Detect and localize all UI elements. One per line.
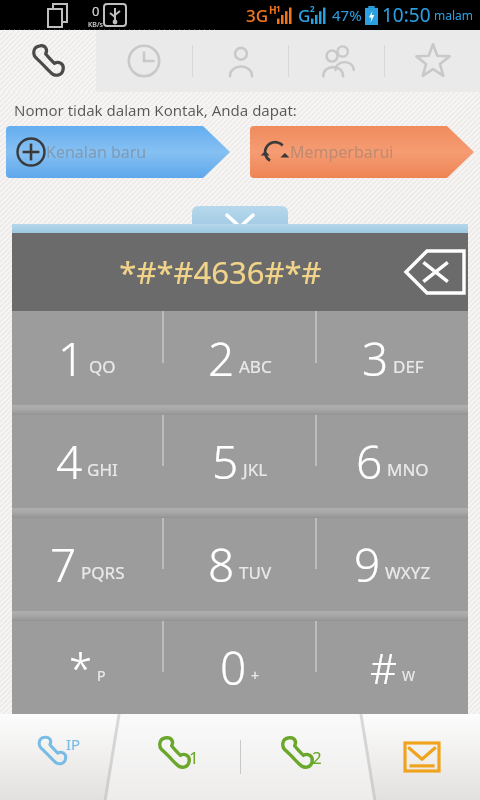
staticText: QO <box>89 355 116 378</box>
button[interactable]: 0 <box>164 621 315 714</box>
button[interactable]: * <box>12 621 162 714</box>
button[interactable]: 2 <box>164 311 315 405</box>
staticText: 4 <box>56 430 83 493</box>
staticText: 2 <box>310 3 315 14</box>
button[interactable]: Collapse keypad <box>192 206 288 232</box>
staticText: 47% <box>332 5 362 25</box>
staticText: MNO <box>387 458 429 481</box>
staticText: 8 <box>208 533 235 596</box>
button[interactable]: Groups <box>289 30 384 92</box>
staticText: W <box>402 666 416 685</box>
button[interactable]: Kenalan baru <box>6 126 230 178</box>
button[interactable]: Memperbarui <box>250 126 474 178</box>
staticText: 3 <box>362 327 389 390</box>
button[interactable]: 4 <box>12 415 162 508</box>
staticText: WXYZ <box>385 561 431 584</box>
button[interactable]: Call SIM 2 <box>241 714 363 800</box>
staticText: PQRS <box>81 561 125 584</box>
staticText: G <box>298 4 311 27</box>
button[interactable]: # <box>317 621 468 714</box>
staticText: 10:50 <box>382 2 431 28</box>
staticText: 5 <box>212 430 239 493</box>
button[interactable]: 9 <box>317 518 468 611</box>
button[interactable]: 8 <box>164 518 315 611</box>
button[interactable]: 3 <box>317 311 468 405</box>
staticText: P <box>97 666 106 685</box>
staticText: H <box>269 3 277 17</box>
staticText: 9 <box>354 533 381 596</box>
staticText: 1 <box>58 327 85 390</box>
button[interactable]: Backspace <box>402 241 468 303</box>
button[interactable]: Call SIM 1 <box>118 714 240 800</box>
button[interactable]: 6 <box>317 415 468 508</box>
staticText: Memperbarui <box>290 141 394 163</box>
staticText: KB/s <box>88 20 103 30</box>
button[interactable]: Favorites <box>385 30 480 92</box>
button[interactable]: Message <box>363 714 480 800</box>
staticText: # <box>370 639 398 696</box>
staticText: 3G <box>246 4 269 27</box>
button[interactable]: Keypad <box>0 30 96 92</box>
staticText: 6 <box>356 430 383 493</box>
staticText: * <box>69 639 93 696</box>
staticText: malam <box>434 7 474 23</box>
staticText: 2 <box>312 746 322 769</box>
staticText: DEF <box>393 355 424 378</box>
staticText: *#*#4636#*# <box>119 251 322 293</box>
staticText: 2 <box>208 327 235 390</box>
staticText: JKL <box>243 458 268 481</box>
button[interactable]: Recent calls <box>96 30 192 92</box>
staticText: Kenalan baru <box>46 141 147 163</box>
staticText: 0 <box>92 2 100 20</box>
staticText: 0 <box>220 636 247 699</box>
button[interactable]: IP call <box>0 714 118 800</box>
button[interactable]: 5 <box>164 415 315 508</box>
staticText: IP <box>66 734 81 754</box>
button[interactable]: 7 <box>12 518 162 611</box>
staticText: 1 <box>276 3 281 14</box>
button[interactable]: 1 <box>12 311 162 405</box>
staticText: ABC <box>239 355 272 378</box>
staticText: GHI <box>87 458 118 481</box>
staticText: 7 <box>50 533 77 596</box>
staticText: + <box>251 666 260 685</box>
staticText: Nomor tidak dalam Kontak, Anda dapat: <box>14 100 297 120</box>
button[interactable]: Contacts <box>193 30 288 92</box>
staticText: 1 <box>189 746 199 769</box>
staticText: TUV <box>239 561 272 584</box>
